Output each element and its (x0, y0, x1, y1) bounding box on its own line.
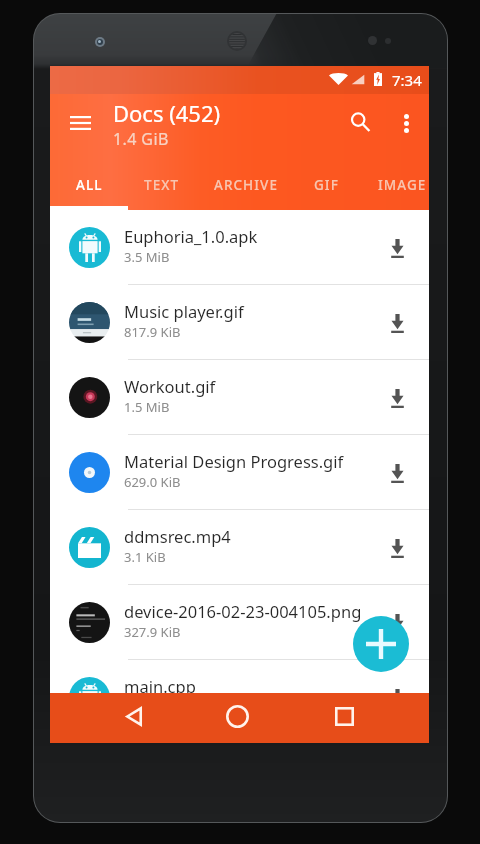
staticText: Workout.gif (124, 375, 216, 397)
staticText: Docs (452) (113, 98, 221, 128)
staticText: main.cpp (124, 675, 196, 693)
button[interactable]: ALL (50, 160, 128, 210)
button[interactable]: Download main.cpp (373, 674, 421, 693)
button[interactable]: Music player.gif (50, 285, 429, 360)
staticText: ARCHIVE (214, 176, 278, 194)
button[interactable]: Download ddmsrec.mp4 (373, 524, 421, 572)
staticText: ALL (76, 176, 103, 194)
staticText: TEXT (144, 176, 180, 194)
button[interactable]: device-2016-02-23-004105.png (50, 585, 429, 660)
staticText: GIF (314, 176, 339, 194)
button[interactable]: Euphoria_1.0.apk (50, 210, 429, 285)
staticText: IMAGE (378, 176, 427, 194)
staticText: 1.5 MiB (124, 398, 170, 416)
button[interactable]: Download Music player.gif (373, 299, 421, 347)
button[interactable]: Workout.gif (50, 360, 429, 435)
staticText: device-2016-02-23-004105.png (124, 600, 362, 622)
button[interactable]: Home (213, 693, 261, 740)
button[interactable]: Download Workout.gif (373, 374, 421, 422)
button[interactable]: IMAGE (356, 160, 429, 210)
staticText: Material Design Progress.gif (124, 450, 344, 472)
staticText: 327.9 KiB (124, 623, 181, 641)
button[interactable]: Open navigation menu (57, 100, 103, 146)
button[interactable]: ARCHIVE (196, 160, 296, 210)
button[interactable]: Back (110, 693, 158, 740)
staticText: 1.4 GiB (113, 128, 169, 150)
staticText: 3.5 MiB (124, 248, 170, 266)
staticText: Euphoria_1.0.apk (124, 225, 258, 247)
button[interactable]: Add (353, 616, 409, 672)
button[interactable]: More options (383, 100, 429, 146)
button[interactable]: TEXT (128, 160, 196, 210)
button[interactable]: main.cpp (50, 660, 429, 693)
button[interactable]: Search (337, 99, 383, 145)
staticText: 629.0 KiB (124, 473, 181, 491)
button[interactable]: Download device-2016-02-23-004105.png (373, 599, 421, 647)
button[interactable]: Material Design Progress.gif (50, 435, 429, 510)
button[interactable]: Download Material Design Progress.gif (373, 449, 421, 497)
staticText: ddmsrec.mp4 (124, 525, 231, 547)
button[interactable]: Recent apps (320, 693, 368, 740)
button[interactable]: GIF (296, 160, 356, 210)
staticText: 7:34 (392, 70, 422, 90)
button[interactable]: ddmsrec.mp4 (50, 510, 429, 585)
staticText: Music player.gif (124, 300, 244, 322)
staticText: 817.9 KiB (124, 323, 181, 341)
staticText: 3.1 KiB (124, 548, 166, 566)
button[interactable]: Download Euphoria_1.0.apk (373, 224, 421, 272)
